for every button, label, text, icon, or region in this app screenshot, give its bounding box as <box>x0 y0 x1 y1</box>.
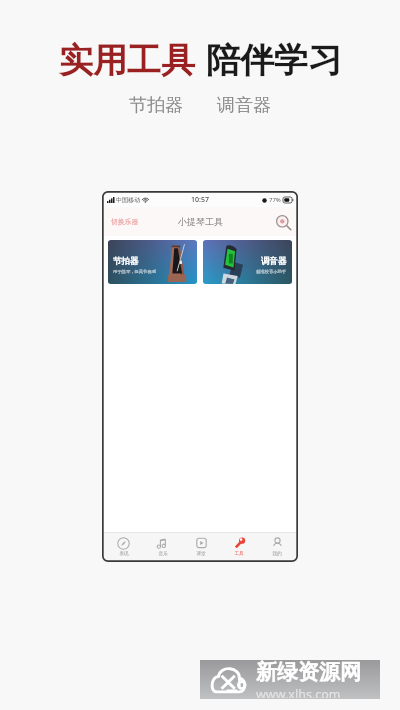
button[interactable]: 发现 <box>104 533 143 560</box>
staticText: 陪伴学习 <box>206 39 342 82</box>
button[interactable]: 课堂 <box>182 533 220 560</box>
button[interactable]: 工具 <box>220 533 258 560</box>
staticText: 用于练琴，提高节奏感 <box>113 269 156 274</box>
staticText: 课堂 <box>196 551 206 557</box>
button[interactable]: 节拍器 <box>108 240 197 284</box>
button[interactable]: 切换乐器 <box>109 215 141 228</box>
staticText: 节拍器 <box>129 94 183 117</box>
staticText: 调音器 <box>217 94 271 117</box>
staticText: 切换乐器 <box>111 217 139 226</box>
staticText: 实用工具 <box>59 39 195 82</box>
staticText: www.xlhs.com <box>256 686 341 698</box>
button[interactable]: 调音器 <box>203 240 292 284</box>
staticText: 77% <box>269 196 281 204</box>
staticText: 节拍器 <box>113 256 139 267</box>
button[interactable]: 我的 <box>258 533 296 560</box>
staticText: 精准校音小助手 <box>256 269 287 274</box>
staticText: 新绿资源网 <box>256 659 361 685</box>
staticText: 调音器 <box>261 256 287 267</box>
button[interactable]: Search <box>275 214 291 230</box>
staticText: 小提琴工具 <box>178 216 223 227</box>
staticText: 音乐 <box>158 551 168 557</box>
staticText: 10:57 <box>191 195 209 205</box>
staticText: 中国移动 <box>116 196 140 204</box>
staticText: 我的 <box>272 551 282 557</box>
button[interactable]: 音乐 <box>143 533 182 560</box>
staticText: 发现 <box>119 551 129 557</box>
staticText: 工具 <box>234 551 244 557</box>
